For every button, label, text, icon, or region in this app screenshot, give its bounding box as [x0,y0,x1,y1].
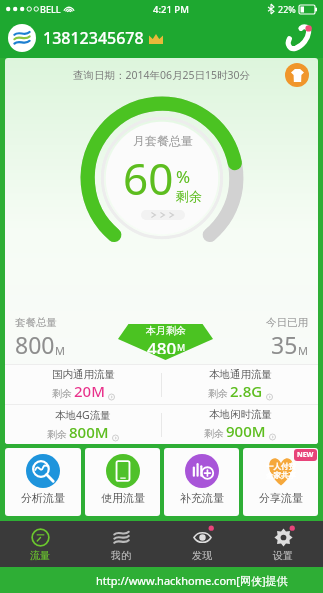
button[interactable]: Shop [285,63,309,87]
staticText: 分析流量 [21,491,65,505]
staticText: 查询日期：2014年06月25日15时30分 [73,68,251,82]
staticText: 剩余 [208,387,228,400]
staticText: 剩余 [204,427,224,440]
staticText: 流量 [30,549,50,562]
staticText: 剩余 [52,387,72,400]
staticText: 480 [147,337,177,354]
button[interactable]: Call [283,22,315,54]
button[interactable]: 使用流量 [85,448,160,516]
staticText: 全家共享 [266,471,296,480]
staticText: 剩余 [47,428,67,441]
button[interactable]: 本地4G流量 [5,405,161,444]
button[interactable]: 本月剩余 [118,324,213,360]
staticText: 本月剩余 [146,324,186,337]
staticText: 补充流量 [180,491,224,505]
staticText: NEW [297,450,314,460]
staticText: 900M [226,421,266,441]
button[interactable]: 本地通用流量 [162,365,318,404]
staticText: M [298,343,308,358]
staticText: 20M [74,381,105,401]
staticText: http://www.hackhome.com[网侠]提供 [96,573,288,588]
staticText: 35 [271,329,298,360]
button[interactable]: 流量 [0,521,80,567]
staticText: 800 [15,329,55,360]
staticText: 设置 [273,549,293,562]
button[interactable]: 本地闲时流量 [162,405,318,444]
staticText: 本地闲时流量 [209,408,272,421]
staticText: M [177,341,186,353]
button[interactable]: 我的 [80,521,161,567]
button[interactable]: 国内通用流量 [5,365,161,404]
staticText: 4:21 PM [153,3,189,16]
staticText: 一人付费 [266,462,296,471]
staticText: 套餐总量 [15,316,57,329]
staticText: 我的 [111,549,131,562]
staticText: 800M [69,422,109,442]
staticText: % [176,165,191,188]
staticText: 60 [123,148,174,208]
button[interactable]: 分析流量 [5,448,81,516]
staticText: BELL [40,3,61,15]
staticText: 今日已用 [266,316,308,329]
button[interactable]: 发现 [161,521,242,567]
staticText: 国内通用流量 [52,368,115,381]
staticText: 月套餐总量 [133,133,193,148]
staticText: 分享流量 [259,491,303,505]
staticText: 22% [278,3,296,15]
staticText: 使用流量 [101,491,145,505]
button[interactable]: 补充流量 [164,448,239,516]
staticText: 2.8G [230,381,263,401]
button[interactable]: Logo [8,24,36,52]
staticText: 本地通用流量 [209,368,272,381]
staticText: 13812345678 [43,27,144,49]
staticText: 剩余 [176,188,202,204]
staticText: 发现 [192,549,212,562]
button[interactable]: 设置 [242,521,323,567]
button[interactable]: 一人付费 [243,448,318,516]
staticText: 本地4G流量 [55,408,111,422]
staticText: M [55,343,65,358]
